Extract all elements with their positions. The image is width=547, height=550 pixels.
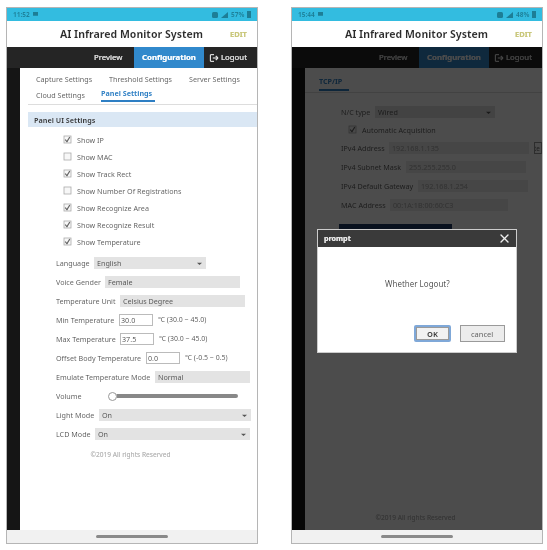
staticText: AI Infrared Monitor System	[345, 27, 489, 41]
button[interactable]: Save	[339, 224, 452, 242]
staticText: prompt	[324, 233, 351, 243]
staticText: Show IP	[77, 135, 104, 145]
staticText: 0.0	[148, 353, 159, 363]
staticText: Configuration	[427, 52, 481, 63]
staticText: Show Recognize Result	[77, 220, 155, 230]
staticText: Automatic Acquisition	[362, 125, 436, 135]
staticText: Max Temperature	[56, 334, 116, 344]
staticText: Voice Gender	[56, 277, 101, 287]
staticText: 255.255.255.0	[409, 162, 456, 172]
staticText: 30.0	[121, 315, 136, 325]
staticText: EDIT	[230, 29, 247, 39]
button[interactable]: Configuration	[419, 47, 489, 68]
staticText: TCP/IP	[319, 76, 343, 86]
staticText: Panel Settings	[101, 88, 153, 98]
staticText: N/C type	[341, 107, 371, 117]
staticText: Min Temperature	[56, 315, 115, 325]
button[interactable]: Show MAC	[20, 148, 257, 165]
staticText: Wired	[378, 107, 398, 117]
staticText: Light Mode	[56, 410, 95, 420]
button[interactable]: LCD Mode	[20, 424, 257, 443]
staticText: Show Recognize Area	[77, 203, 149, 213]
staticText: Show Temperature	[77, 237, 141, 247]
staticText: 15:44	[298, 10, 315, 19]
button[interactable]: Threshold Settings	[109, 74, 173, 84]
staticText: Celsius Degree	[123, 296, 174, 306]
staticText: 37.5	[122, 334, 137, 344]
button[interactable]: N/C type	[305, 102, 542, 121]
staticText: Female	[108, 277, 133, 287]
staticText: Capture Settings	[36, 74, 93, 84]
staticText: Logout	[221, 52, 247, 63]
staticText: Configuration	[142, 52, 196, 63]
button[interactable]: Preview	[83, 48, 134, 67]
staticText: Emulate Temperature Mode	[56, 372, 151, 382]
staticText: On	[98, 429, 109, 439]
staticText: Save	[387, 228, 405, 238]
button[interactable]: Volume	[20, 386, 257, 405]
staticText: OK	[427, 329, 438, 339]
staticText: Show MAC	[77, 152, 113, 162]
staticText: ©2019 All rights Reserved	[305, 513, 526, 522]
button[interactable]: Max Temperature	[20, 329, 257, 348]
staticText: 11:52	[13, 10, 30, 19]
staticText: MAC Address	[341, 200, 386, 210]
staticText: Volume	[56, 391, 82, 401]
staticText: On	[102, 410, 113, 420]
staticText: Preview	[94, 52, 123, 63]
button[interactable]: EDIT	[512, 26, 535, 42]
button[interactable]: Offset Body Temperature	[20, 348, 257, 367]
staticText: 00:1A:1B:00:60:C3	[393, 200, 454, 210]
staticText: Offset Body Temperature	[56, 353, 142, 363]
staticText: English	[97, 258, 122, 268]
staticText: Server Settings	[189, 74, 240, 84]
staticText: Show Track Rect	[77, 169, 132, 179]
staticText: IPv4 Subnet Mask	[341, 162, 402, 172]
button[interactable]: Temperature Unit	[20, 291, 257, 310]
button[interactable]: Logout	[204, 52, 257, 63]
staticText: AI Infrared Monitor System	[60, 27, 204, 41]
button[interactable]: Cloud Settings	[36, 90, 85, 100]
button[interactable]: OK	[416, 327, 449, 340]
staticText: test	[534, 144, 542, 153]
staticText: 192.168.1.135	[392, 143, 439, 153]
button[interactable]: Light Mode	[20, 405, 257, 424]
staticText: Cloud Settings	[36, 90, 85, 100]
button[interactable]: Language	[20, 253, 257, 272]
button[interactable]: Close	[498, 232, 510, 244]
staticText: 192.168.1.254	[421, 181, 468, 191]
staticText: Temperature Unit	[56, 296, 116, 306]
button[interactable]: Show IP	[20, 131, 257, 148]
button[interactable]: EDIT	[227, 26, 250, 42]
staticText: Panel UI Settings	[34, 115, 96, 125]
staticText: 48%	[516, 10, 530, 19]
button[interactable]: Min Temperature	[20, 310, 257, 329]
staticText: Logout	[506, 52, 532, 63]
staticText: Normal	[158, 372, 184, 382]
staticText: Preview	[379, 52, 408, 63]
button[interactable]: Show Temperature	[20, 233, 257, 250]
staticText: Show Number Of Registrations	[77, 186, 182, 196]
button[interactable]: Capture Settings	[36, 74, 93, 84]
staticText: Whether Logout?	[385, 278, 450, 289]
button[interactable]: Show Recognize Result	[20, 216, 257, 233]
staticText: IPv4 Default Gateway	[341, 181, 414, 191]
button[interactable]: Emulate Temperature Mode	[20, 367, 257, 386]
button[interactable]: Configuration	[134, 47, 204, 68]
staticText: Threshold Settings	[109, 74, 173, 84]
button[interactable]: Server Settings	[189, 74, 240, 84]
button[interactable]: Show Number Of Registrations	[20, 182, 257, 199]
button[interactable]: Show Recognize Area	[20, 199, 257, 216]
staticText: ℃ (30.0 ~ 45.0)	[159, 334, 208, 344]
button[interactable]: Preview	[368, 48, 419, 67]
staticText: ©2019 All rights Reserved	[20, 450, 241, 459]
button[interactable]: Voice Gender	[20, 272, 257, 291]
staticText: LCD Mode	[56, 429, 91, 439]
staticText: ℃ (30.0 ~ 45.0)	[158, 315, 207, 325]
button[interactable]: Logout	[489, 52, 542, 63]
staticText: EDIT	[515, 29, 532, 39]
staticText: ℃ (-0.5 ~ 0.5)	[185, 353, 228, 363]
staticText: IPv4 Address	[341, 143, 385, 153]
button[interactable]: Show Track Rect	[20, 165, 257, 182]
button[interactable]: cancel	[460, 325, 505, 342]
